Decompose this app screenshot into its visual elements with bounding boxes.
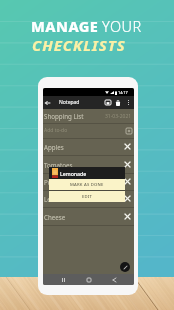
button[interactable]: More options: [124, 96, 132, 109]
staticText: CHECKLISTS: [32, 35, 126, 55]
button[interactable]: Delete Apples: [123, 142, 132, 151]
staticText: Cheese: [44, 213, 66, 221]
staticText: Shopping List: [44, 112, 84, 120]
button[interactable]: Potatoes: [44, 173, 132, 190]
button[interactable]: Recents: [58, 274, 69, 285]
button[interactable]: Back: [109, 274, 120, 285]
button[interactable]: New note: [120, 262, 130, 272]
button[interactable]: Delete Cheese: [123, 212, 132, 221]
button[interactable]: Delete note: [112, 96, 124, 109]
staticText: EDIT: [82, 194, 93, 200]
button[interactable]: Cheese: [44, 208, 132, 225]
staticText: Apples: [44, 143, 64, 151]
staticText: Add to-do: [44, 127, 68, 134]
button[interactable]: Apples: [44, 138, 132, 155]
button[interactable]: MARK AS DONE: [49, 179, 125, 190]
staticText: 31-03-2021: [105, 113, 132, 120]
staticText: Lemonade: [44, 195, 75, 203]
staticText: MARK AS DONE: [70, 182, 104, 188]
staticText: Tomatoes: [44, 161, 73, 169]
button[interactable]: Delete Potatoes: [123, 177, 132, 186]
button[interactable]: Add to-do: [44, 123, 132, 138]
button[interactable]: Back: [43, 96, 52, 109]
staticText: Potatoes: [44, 178, 70, 186]
staticText: MANAGE: [31, 16, 99, 36]
button[interactable]: Delete Lemonade: [123, 194, 132, 203]
button[interactable]: EDIT: [49, 191, 125, 202]
button[interactable]: Save note: [102, 96, 114, 109]
staticText: Notepad: [59, 99, 80, 106]
button[interactable]: Lemonade: [44, 190, 132, 207]
button[interactable]: Home: [83, 274, 94, 285]
button[interactable]: Delete Tomatoes: [123, 160, 132, 169]
staticText: YOUR: [102, 16, 142, 36]
button[interactable]: Tomatoes: [44, 156, 132, 173]
staticText: 14:17: [118, 90, 128, 95]
staticText: Lemonade: [60, 170, 87, 177]
